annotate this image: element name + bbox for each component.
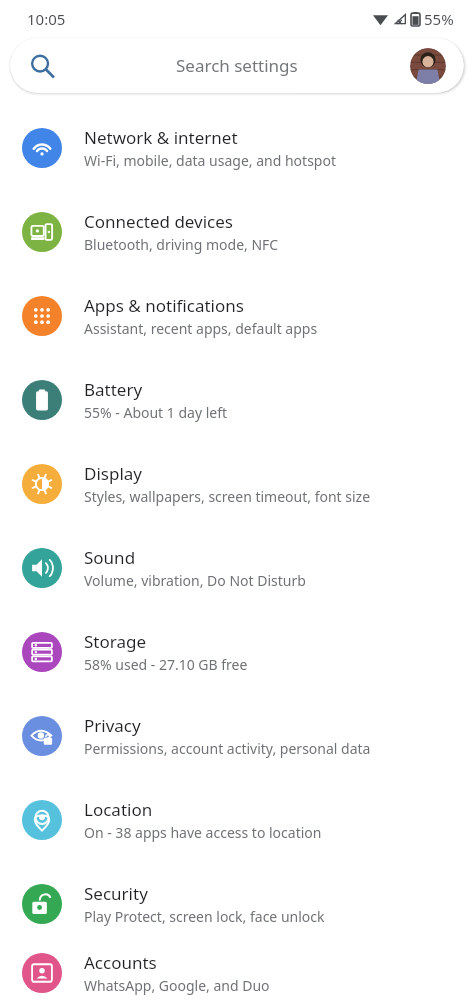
staticText: Connected devices <box>84 210 234 233</box>
button[interactable]: Sound <box>0 526 474 610</box>
staticText: Bluetooth, driving mode, NFC <box>84 235 279 254</box>
staticText: Wi-Fi, mobile, data usage, and hotspot <box>84 151 336 170</box>
staticText: Search settings <box>176 54 298 77</box>
button[interactable]: Network & internet <box>0 106 474 190</box>
staticText: Privacy <box>84 714 141 737</box>
button[interactable]: Search <box>10 38 464 93</box>
button[interactable]: Apps & notifications <box>0 274 474 358</box>
staticText: Volume, vibration, Do Not Disturb <box>84 571 306 590</box>
button[interactable]: Storage <box>0 610 474 694</box>
staticText: Location <box>84 798 153 821</box>
staticText: 55% <box>424 9 454 29</box>
staticText: Permissions, account activity, personal … <box>84 739 371 758</box>
other: Search <box>30 54 54 78</box>
button[interactable]: Privacy <box>0 694 474 778</box>
staticText: Storage <box>84 630 147 653</box>
staticText: 58% used - 27.10 GB free <box>84 655 248 674</box>
staticText: Sound <box>84 546 136 569</box>
button[interactable]: Location <box>0 778 474 862</box>
staticText: Accounts <box>84 951 157 974</box>
staticText: 55% - About 1 day left <box>84 403 228 422</box>
button[interactable]: Accounts <box>0 946 474 1000</box>
button[interactable]: Account <box>410 48 446 84</box>
staticText: Battery <box>84 378 143 401</box>
staticText: Styles, wallpapers, screen timeout, font… <box>84 487 371 506</box>
staticText: Display <box>84 462 142 485</box>
staticText: Security <box>84 882 148 905</box>
staticText: Play Protect, screen lock, face unlock <box>84 907 325 926</box>
staticText: On - 38 apps have access to location <box>84 823 322 842</box>
staticText: Network & internet <box>84 126 238 149</box>
button[interactable]: Display <box>0 442 474 526</box>
button[interactable]: Battery <box>0 358 474 442</box>
staticText: 10:05 <box>27 9 66 29</box>
staticText: Assistant, recent apps, default apps <box>84 319 318 338</box>
staticText: WhatsApp, Google, and Duo <box>84 976 270 995</box>
button[interactable]: Security <box>0 862 474 946</box>
staticText: Apps & notifications <box>84 294 244 317</box>
button[interactable]: Connected devices <box>0 190 474 274</box>
